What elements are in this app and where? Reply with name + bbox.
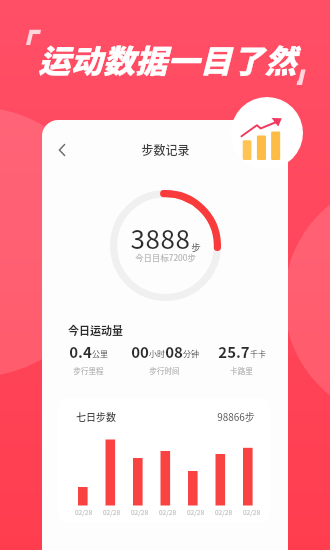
staticText: 分钟: [183, 348, 199, 360]
staticText: 小时: [149, 348, 165, 360]
staticText: 运动数据一目了然: [38, 36, 297, 82]
staticText: 公里: [92, 348, 108, 360]
staticText: 步行里程: [73, 365, 104, 376]
staticText: 02/28: [243, 507, 260, 516]
staticText: 0.4: [69, 341, 92, 363]
staticText: 02/28: [159, 507, 176, 516]
button[interactable]: Statistics: [231, 97, 303, 169]
staticText: 步数记录: [141, 141, 190, 158]
staticText: 25.7: [218, 341, 250, 363]
button[interactable]: Back: [48, 136, 76, 164]
staticText: 08: [165, 341, 183, 363]
staticText: 02/28: [187, 507, 204, 516]
staticText: 02/28: [75, 507, 92, 516]
staticText: 02/28: [215, 507, 232, 516]
staticText: 3888: [130, 219, 191, 257]
staticText: 98866步: [217, 409, 255, 423]
staticText: 今日运动量: [68, 322, 123, 338]
staticText: 步: [191, 240, 201, 254]
staticText: 00: [131, 341, 149, 363]
staticText: 七日步数: [76, 409, 116, 423]
staticText: 步行时间: [149, 365, 180, 376]
staticText: 02/28: [131, 507, 148, 516]
button[interactable]: 七日步数: [58, 398, 270, 523]
staticText: 今日目标7200步: [135, 251, 196, 263]
staticText: 千卡: [250, 348, 266, 360]
staticText: 02/28: [103, 507, 120, 516]
staticText: 卡路里: [230, 365, 253, 376]
